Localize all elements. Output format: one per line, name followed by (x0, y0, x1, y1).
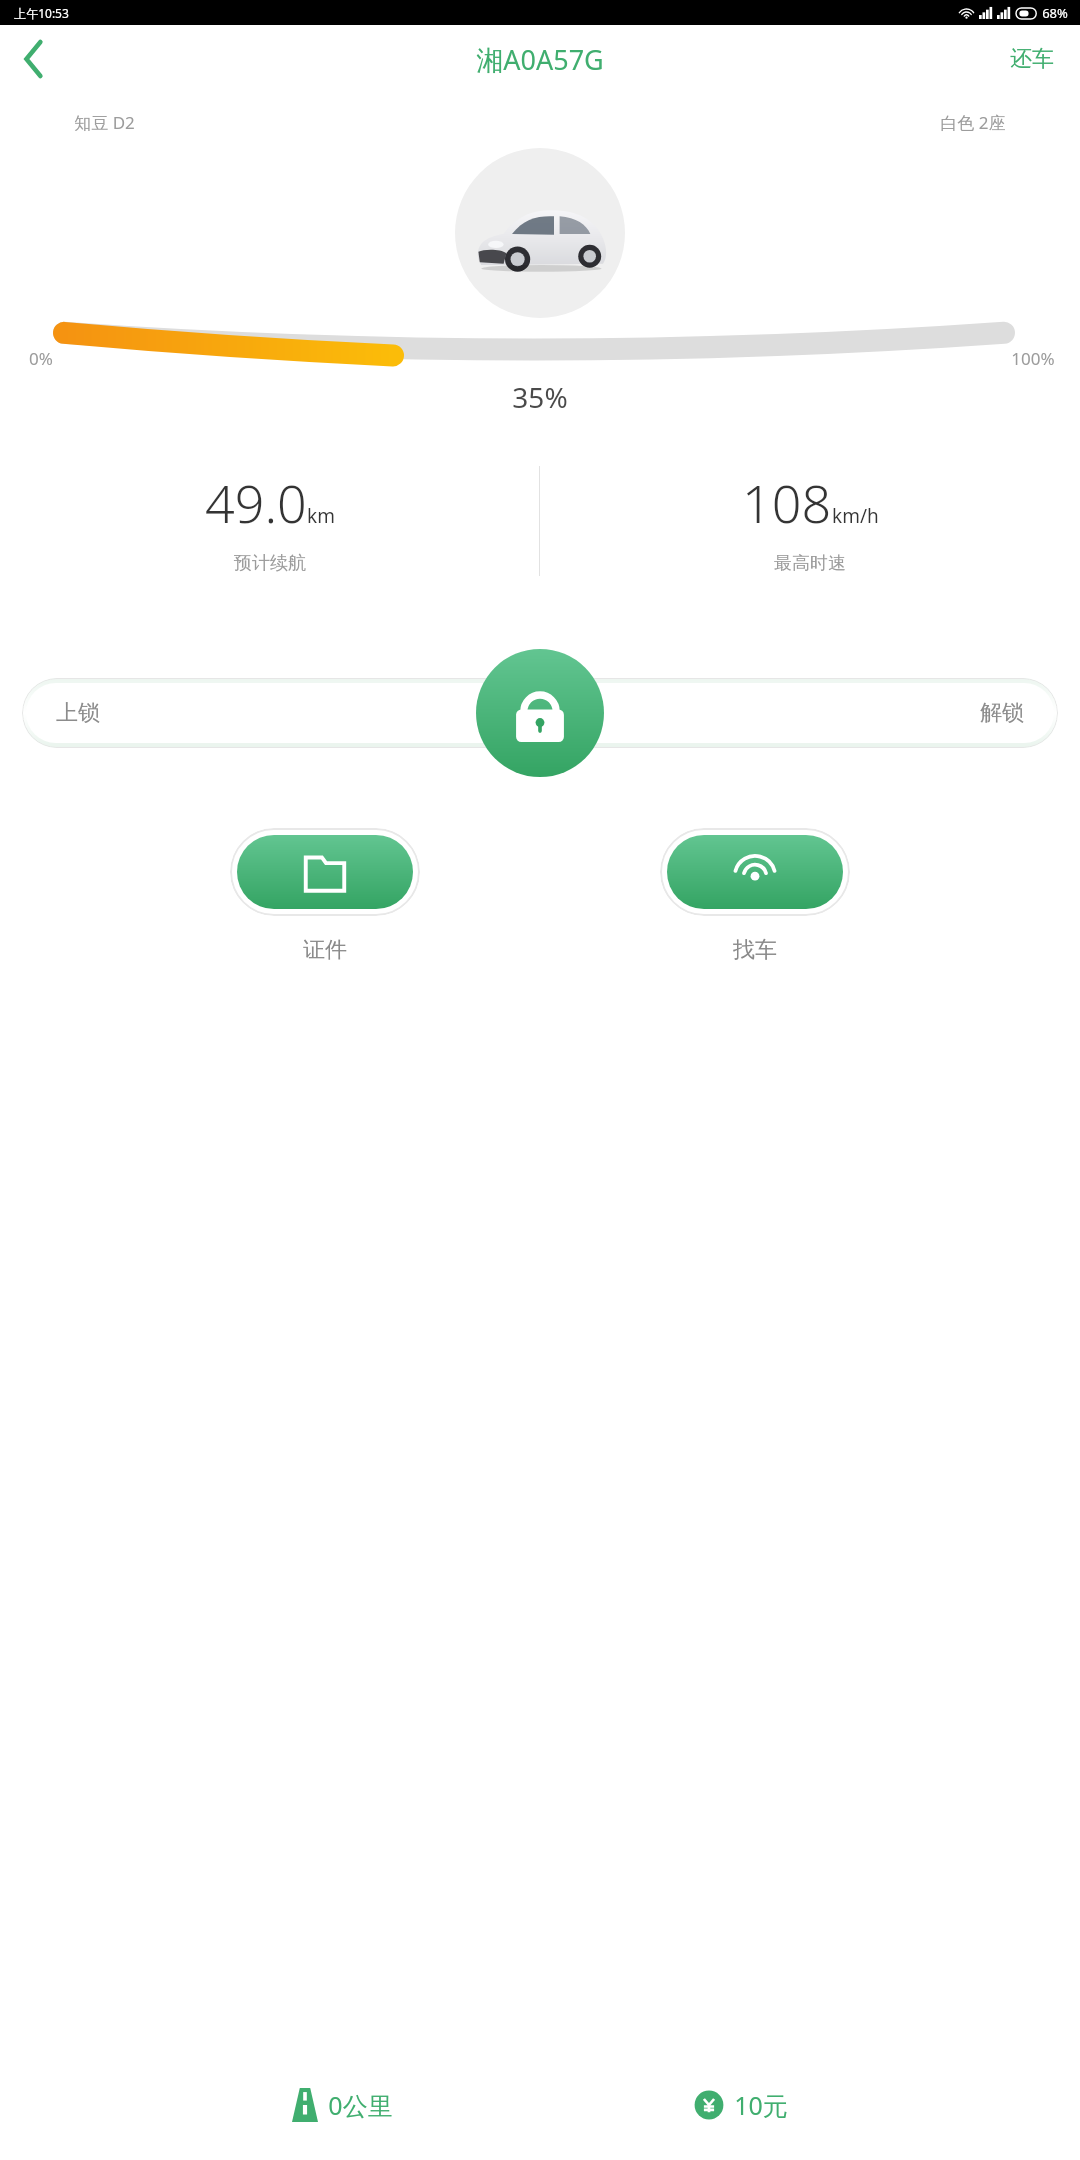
staticText: 68% (1042, 4, 1068, 22)
staticText: 0% (18, 347, 64, 370)
button[interactable]: 0公里 (282, 2082, 403, 2128)
button[interactable]: Back (0, 25, 68, 93)
staticText: 10元 (734, 2088, 788, 2122)
button[interactable]: Documents (220, 824, 430, 968)
staticText: 108 (742, 467, 832, 538)
button[interactable]: 还车 (1002, 39, 1062, 79)
staticText: km (307, 503, 335, 529)
staticText: 上锁 (56, 699, 100, 727)
staticText: 还车 (1010, 45, 1054, 73)
button[interactable]: Find car (650, 824, 860, 968)
staticText: 49.0 (205, 467, 307, 538)
button[interactable]: Lock (476, 649, 604, 777)
staticText: 知豆 D2 (74, 111, 135, 134)
staticText: 预计续航 (234, 552, 306, 575)
staticText: 白色 2座 (940, 111, 1006, 134)
staticText: 100% (1004, 347, 1062, 370)
staticText: 解锁 (980, 699, 1024, 727)
staticText: 35% (512, 378, 568, 416)
staticText: 上午10:53 (14, 5, 69, 21)
staticText: 证件 (303, 936, 347, 964)
staticText: 最高时速 (774, 552, 846, 575)
staticText: 湘A0A57G (476, 41, 604, 78)
staticText: km/h (832, 503, 879, 529)
button[interactable]: 10元 (684, 2082, 798, 2128)
staticText: 找车 (733, 936, 777, 964)
staticText: 0公里 (328, 2088, 393, 2122)
